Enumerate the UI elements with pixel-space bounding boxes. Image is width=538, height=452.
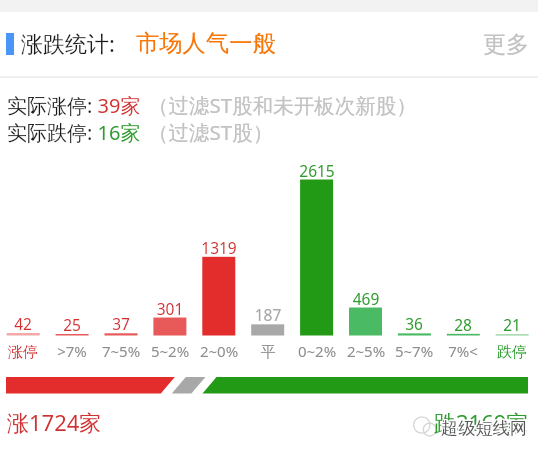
button[interactable]: 更多 bbox=[470, 22, 538, 66]
staticText: 469 bbox=[342, 288, 390, 309]
button[interactable] bbox=[146, 160, 194, 360]
staticText: 平 bbox=[244, 343, 292, 362]
staticText: 超级短线网 bbox=[441, 417, 527, 439]
staticText: 28 bbox=[439, 314, 487, 335]
staticText: 涨停 bbox=[0, 343, 47, 362]
staticText: 2~5% bbox=[342, 341, 390, 361]
staticText: 21 bbox=[488, 314, 536, 335]
button[interactable] bbox=[195, 160, 243, 360]
staticText: 37 bbox=[97, 313, 145, 334]
button[interactable] bbox=[293, 160, 341, 360]
staticText: 187 bbox=[244, 304, 292, 325]
staticText: 超级短线网 bbox=[442, 416, 528, 438]
button[interactable] bbox=[244, 160, 292, 360]
staticText: 超级短线网 bbox=[441, 418, 527, 440]
button[interactable] bbox=[48, 160, 96, 360]
staticText: 超级短线网 bbox=[440, 417, 526, 439]
button[interactable] bbox=[390, 160, 438, 360]
staticText: 更多 bbox=[483, 30, 529, 59]
staticText: 5~7% bbox=[390, 341, 438, 361]
staticText: 7%< bbox=[439, 341, 487, 361]
staticText: 市场人气一般 bbox=[136, 29, 276, 58]
staticText: 42 bbox=[0, 313, 47, 334]
staticText: 超级短线网 bbox=[442, 417, 528, 439]
staticText: （过滤ST股和未开板次新股） bbox=[148, 91, 417, 119]
button[interactable] bbox=[0, 160, 47, 360]
staticText: 7~5% bbox=[97, 341, 145, 361]
staticText: 0~2% bbox=[293, 341, 341, 361]
staticText: 超级短线网 bbox=[440, 416, 526, 438]
staticText: 跌3169家 bbox=[434, 407, 529, 437]
button[interactable]: 涨跌统计: bbox=[0, 22, 300, 66]
staticText: 超级短线网 bbox=[440, 418, 526, 440]
staticText: 涨1724家 bbox=[7, 407, 102, 437]
staticText: 5~2% bbox=[146, 341, 194, 361]
button[interactable] bbox=[97, 160, 145, 360]
staticText: 超级短线网 bbox=[442, 418, 528, 440]
button[interactable] bbox=[488, 160, 536, 360]
staticText: 2615 bbox=[293, 160, 341, 181]
staticText: 36 bbox=[390, 313, 438, 334]
staticText: 301 bbox=[146, 298, 194, 319]
staticText: （过滤ST股） bbox=[148, 118, 274, 146]
staticText: 实际涨停: 39家 bbox=[7, 92, 141, 119]
button[interactable]: WeChat official account bbox=[412, 415, 438, 439]
staticText: >7% bbox=[48, 341, 96, 361]
staticText: 跌停 bbox=[488, 343, 536, 362]
staticText: 超级短线网 bbox=[441, 416, 527, 438]
staticText: 25 bbox=[48, 314, 96, 335]
button[interactable] bbox=[342, 160, 390, 360]
staticText: 2~0% bbox=[195, 341, 243, 361]
button[interactable] bbox=[439, 160, 487, 360]
staticText: 实际跌停: 16家 bbox=[7, 119, 141, 146]
staticText: 1319 bbox=[195, 237, 243, 258]
staticText: 涨跌统计: bbox=[21, 28, 115, 58]
